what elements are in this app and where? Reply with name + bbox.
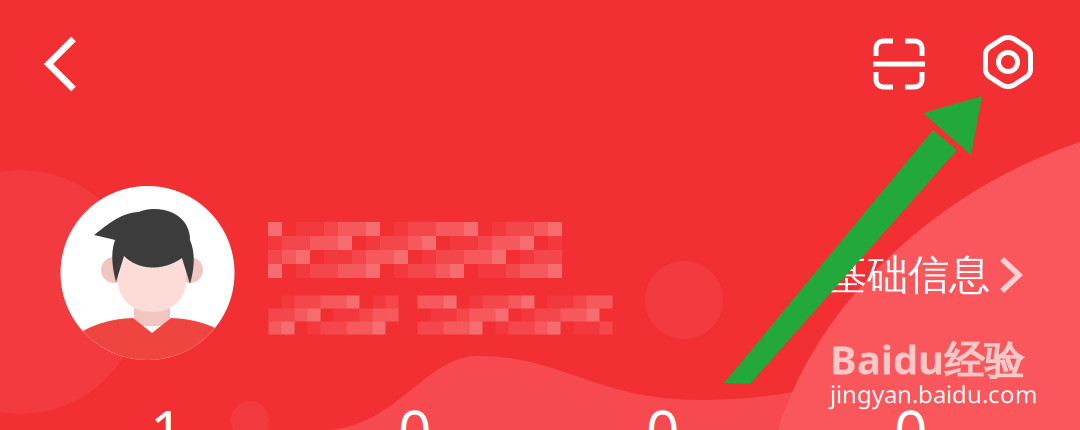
staticText: 0 [894, 391, 928, 430]
staticText: jingyan.baidu.com [830, 378, 1037, 410]
button[interactable]: 0 [539, 408, 787, 430]
button[interactable]: Scan QR code [855, 20, 943, 108]
button[interactable]: Back [16, 19, 106, 109]
button[interactable]: 1 [43, 408, 291, 430]
button[interactable]: 基础信息 [826, 244, 1042, 306]
staticText: 0 [398, 391, 432, 430]
button[interactable]: 0 [291, 408, 539, 430]
staticText: 1 [150, 391, 184, 430]
button[interactable]: Settings [964, 18, 1052, 106]
staticText: 0 [646, 391, 680, 430]
button[interactable]: Profile photo [60, 186, 235, 360]
staticText: 基础信息 [826, 250, 990, 300]
button[interactable]: 0 [787, 408, 1035, 430]
staticText: Baidu经验 [830, 332, 1024, 386]
